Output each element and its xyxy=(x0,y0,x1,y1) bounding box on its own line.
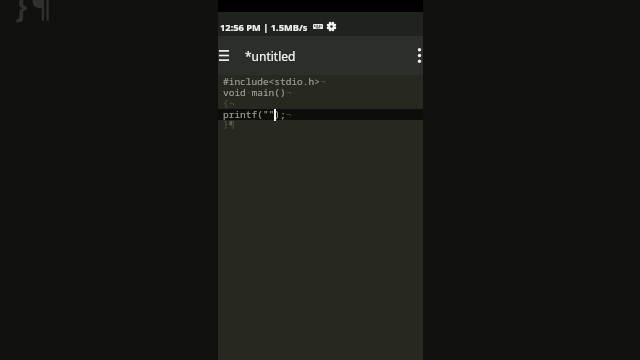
button[interactable]: Source code editor xyxy=(218,0,423,360)
button[interactable]: More options xyxy=(418,36,434,75)
button[interactable]: Open navigation menu xyxy=(218,36,240,75)
staticText: 12:56 PM | 1.5MB/s xyxy=(220,21,308,34)
button[interactable]: #include<stdio.h>¬ xyxy=(223,75,326,88)
button[interactable]: {¬ xyxy=(223,97,235,110)
staticText: }¶ xyxy=(12,0,51,27)
button[interactable]: void·main()¬ xyxy=(223,86,292,99)
button[interactable]: printf("");¬ xyxy=(223,108,292,121)
button[interactable]: }¶ xyxy=(223,118,235,131)
button[interactable]: *untitled xyxy=(245,48,296,64)
